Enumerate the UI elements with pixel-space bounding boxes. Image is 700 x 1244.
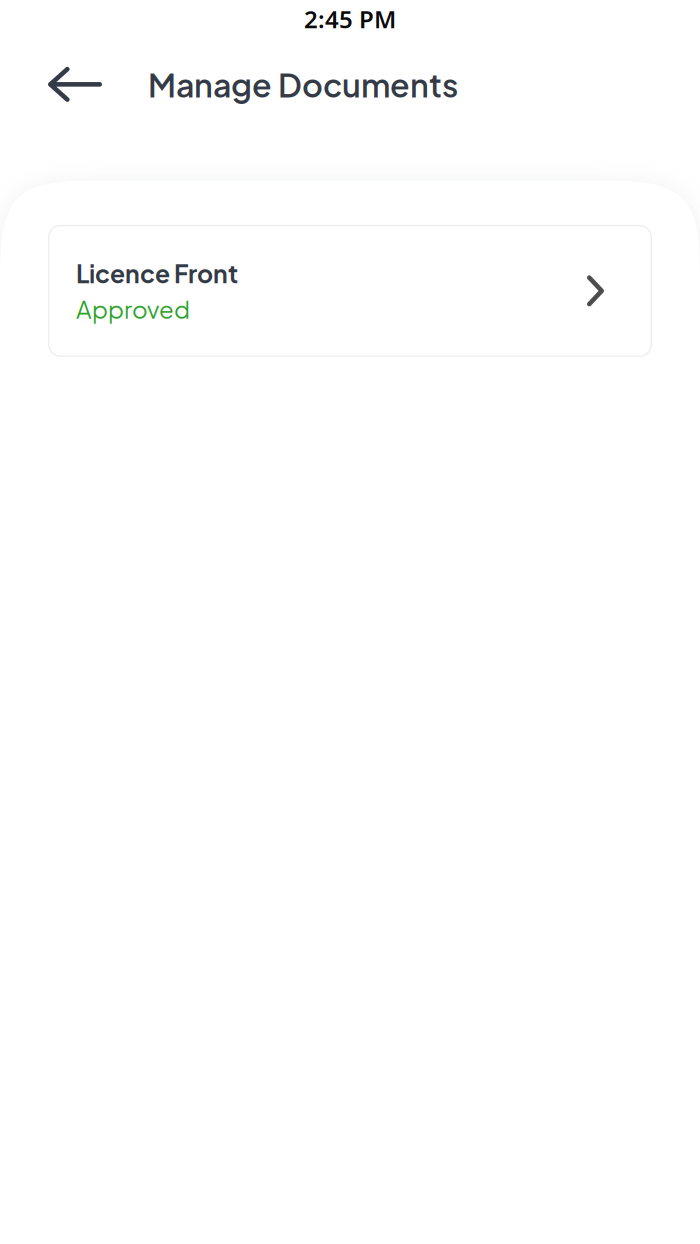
button[interactable]: Back [0,54,116,115]
staticText: Approved [76,294,190,324]
staticText: Manage Documents [148,64,458,104]
button[interactable]: Licence Front [48,225,652,357]
staticText: 2:45 PM [304,3,396,35]
staticText: Licence Front [76,258,238,289]
